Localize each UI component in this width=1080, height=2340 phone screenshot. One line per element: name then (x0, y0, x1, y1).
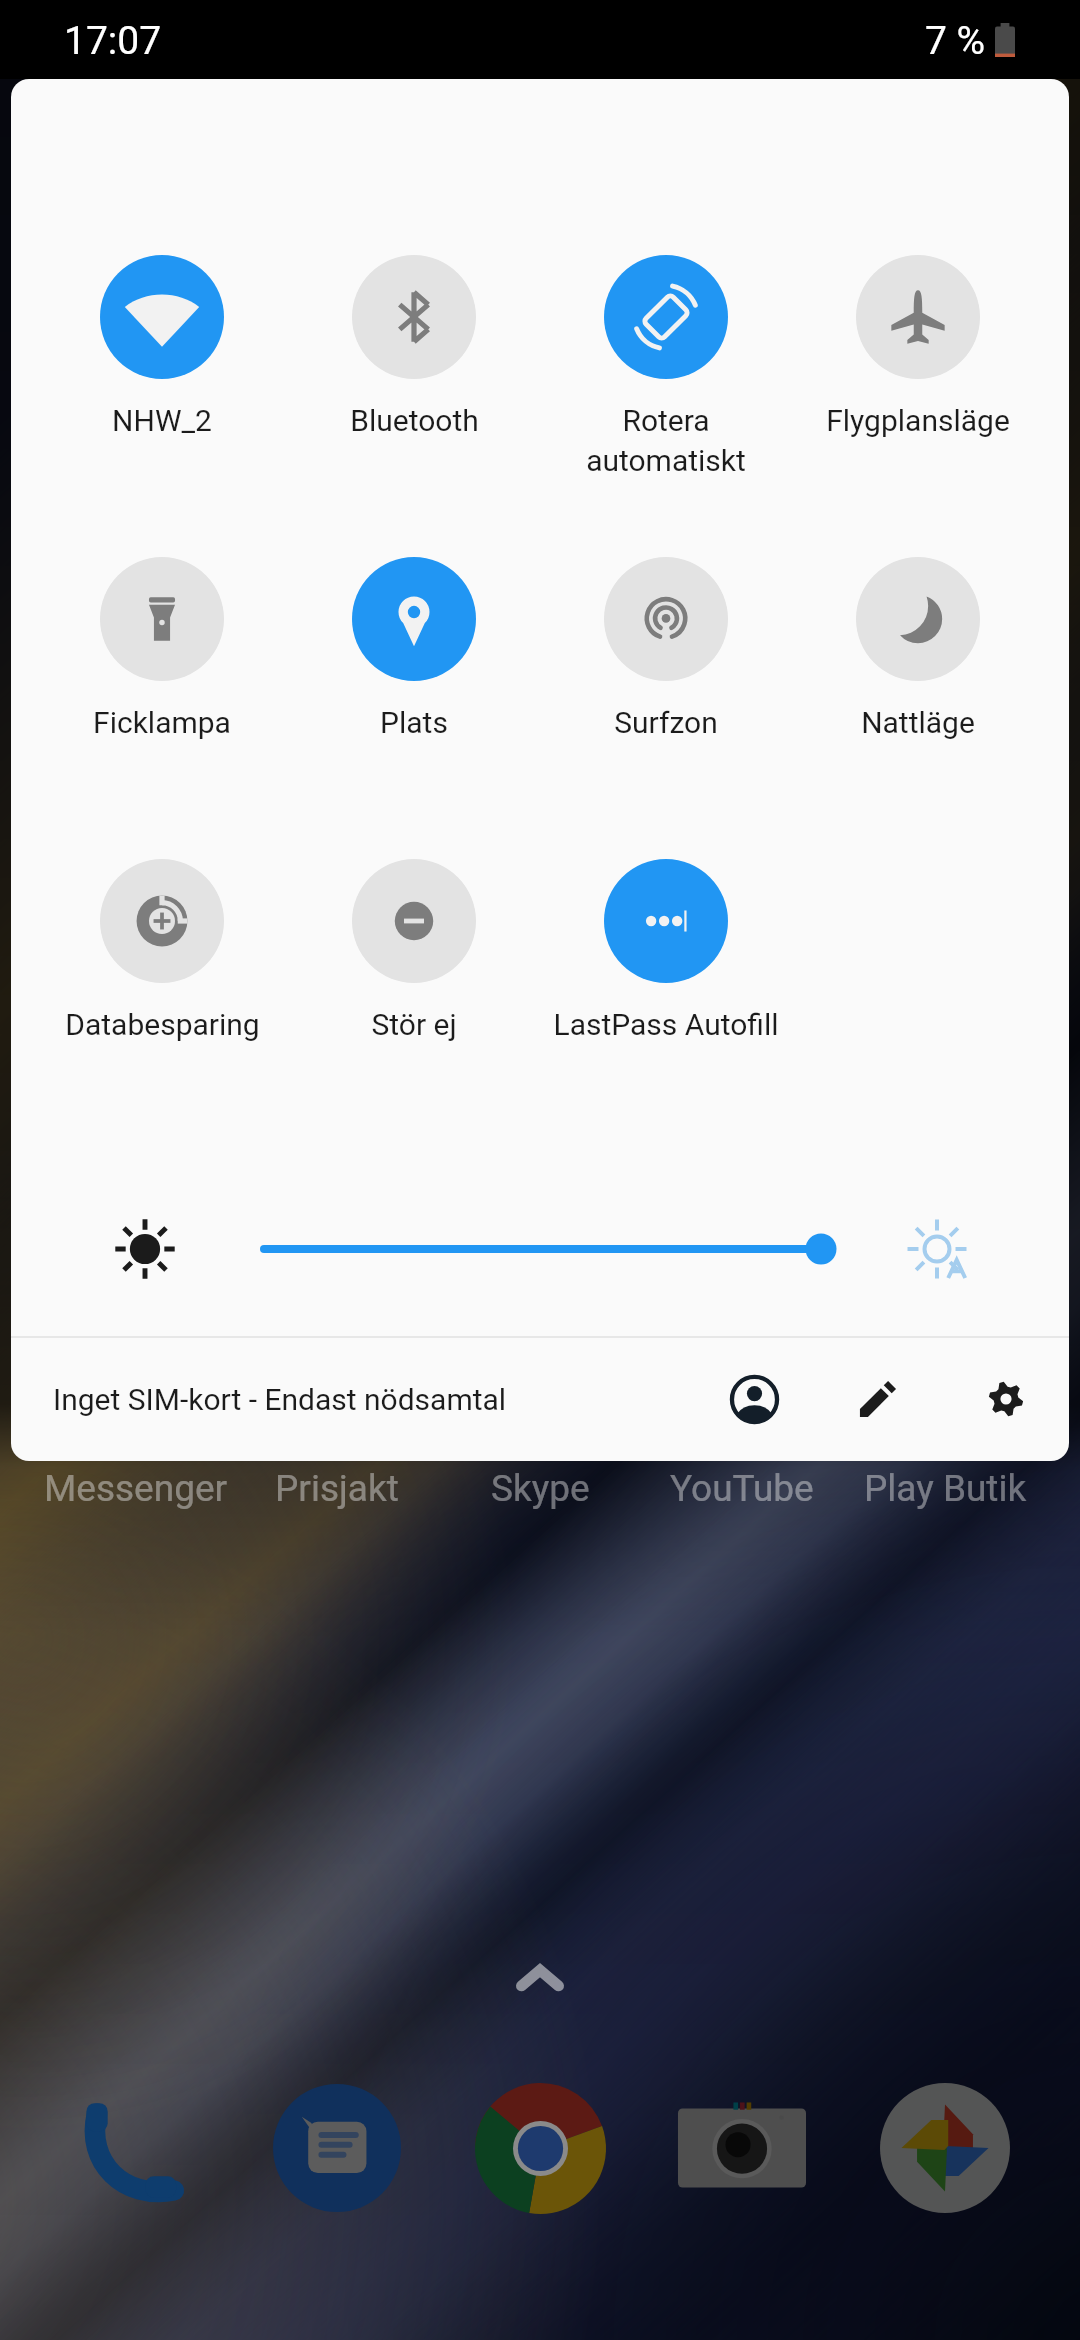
staticText: Inget SIM-kort - Endast nödsamtal (53, 1382, 507, 1417)
button[interactable]: Messages (262, 2073, 412, 2223)
staticText: Flygplansläge (826, 403, 1010, 438)
button[interactable]: Bluetooth (288, 255, 540, 455)
staticText: Skype (491, 1467, 590, 1510)
button[interactable]: Camera (667, 2073, 817, 2223)
staticText: Plats (380, 705, 448, 740)
staticText: LastPass Autofill (553, 1007, 779, 1042)
button[interactable]: Phone (61, 2073, 211, 2223)
button[interactable]: Brightness (230, 1187, 870, 1311)
button[interactable]: LastPass Autofill (540, 859, 792, 1059)
button[interactable]: Photos (870, 2073, 1020, 2223)
staticText: YouTube (670, 1467, 814, 1510)
staticText: Play Butik (864, 1467, 1027, 1510)
button[interactable]: Edit (832, 1353, 924, 1445)
button[interactable]: Surfzon (540, 557, 792, 757)
staticText: Ficklampa (93, 705, 231, 740)
button[interactable]: Ficklampa (36, 557, 288, 757)
button[interactable]: All apps (490, 1933, 590, 2023)
button[interactable]: Plats (288, 557, 540, 757)
staticText: Messenger (44, 1467, 228, 1510)
staticText: NHW_2 (112, 403, 212, 438)
button[interactable]: User (708, 1353, 800, 1445)
staticText: 17:07 (64, 18, 162, 64)
staticText: Bluetooth (350, 403, 479, 438)
staticText: Databesparing (65, 1007, 260, 1042)
button[interactable]: NHW_2 (36, 255, 288, 455)
button[interactable]: Stör ej (288, 859, 540, 1059)
staticText: Nattläge (861, 705, 975, 740)
button[interactable]: Nattläge (792, 557, 1044, 757)
button[interactable]: Chrome (465, 2073, 615, 2223)
staticText: Rotera automatiskt (586, 403, 746, 478)
button[interactable]: Databesparing (36, 859, 288, 1059)
staticText: Stör ej (371, 1007, 457, 1042)
staticText: Prisjakt (275, 1467, 399, 1510)
button[interactable]: Flygplansläge (792, 255, 1044, 455)
button[interactable]: Rotera automatiskt (540, 255, 792, 455)
staticText: 7 % (925, 18, 986, 64)
staticText: Surfzon (614, 705, 718, 740)
button[interactable]: Settings (960, 1353, 1052, 1445)
